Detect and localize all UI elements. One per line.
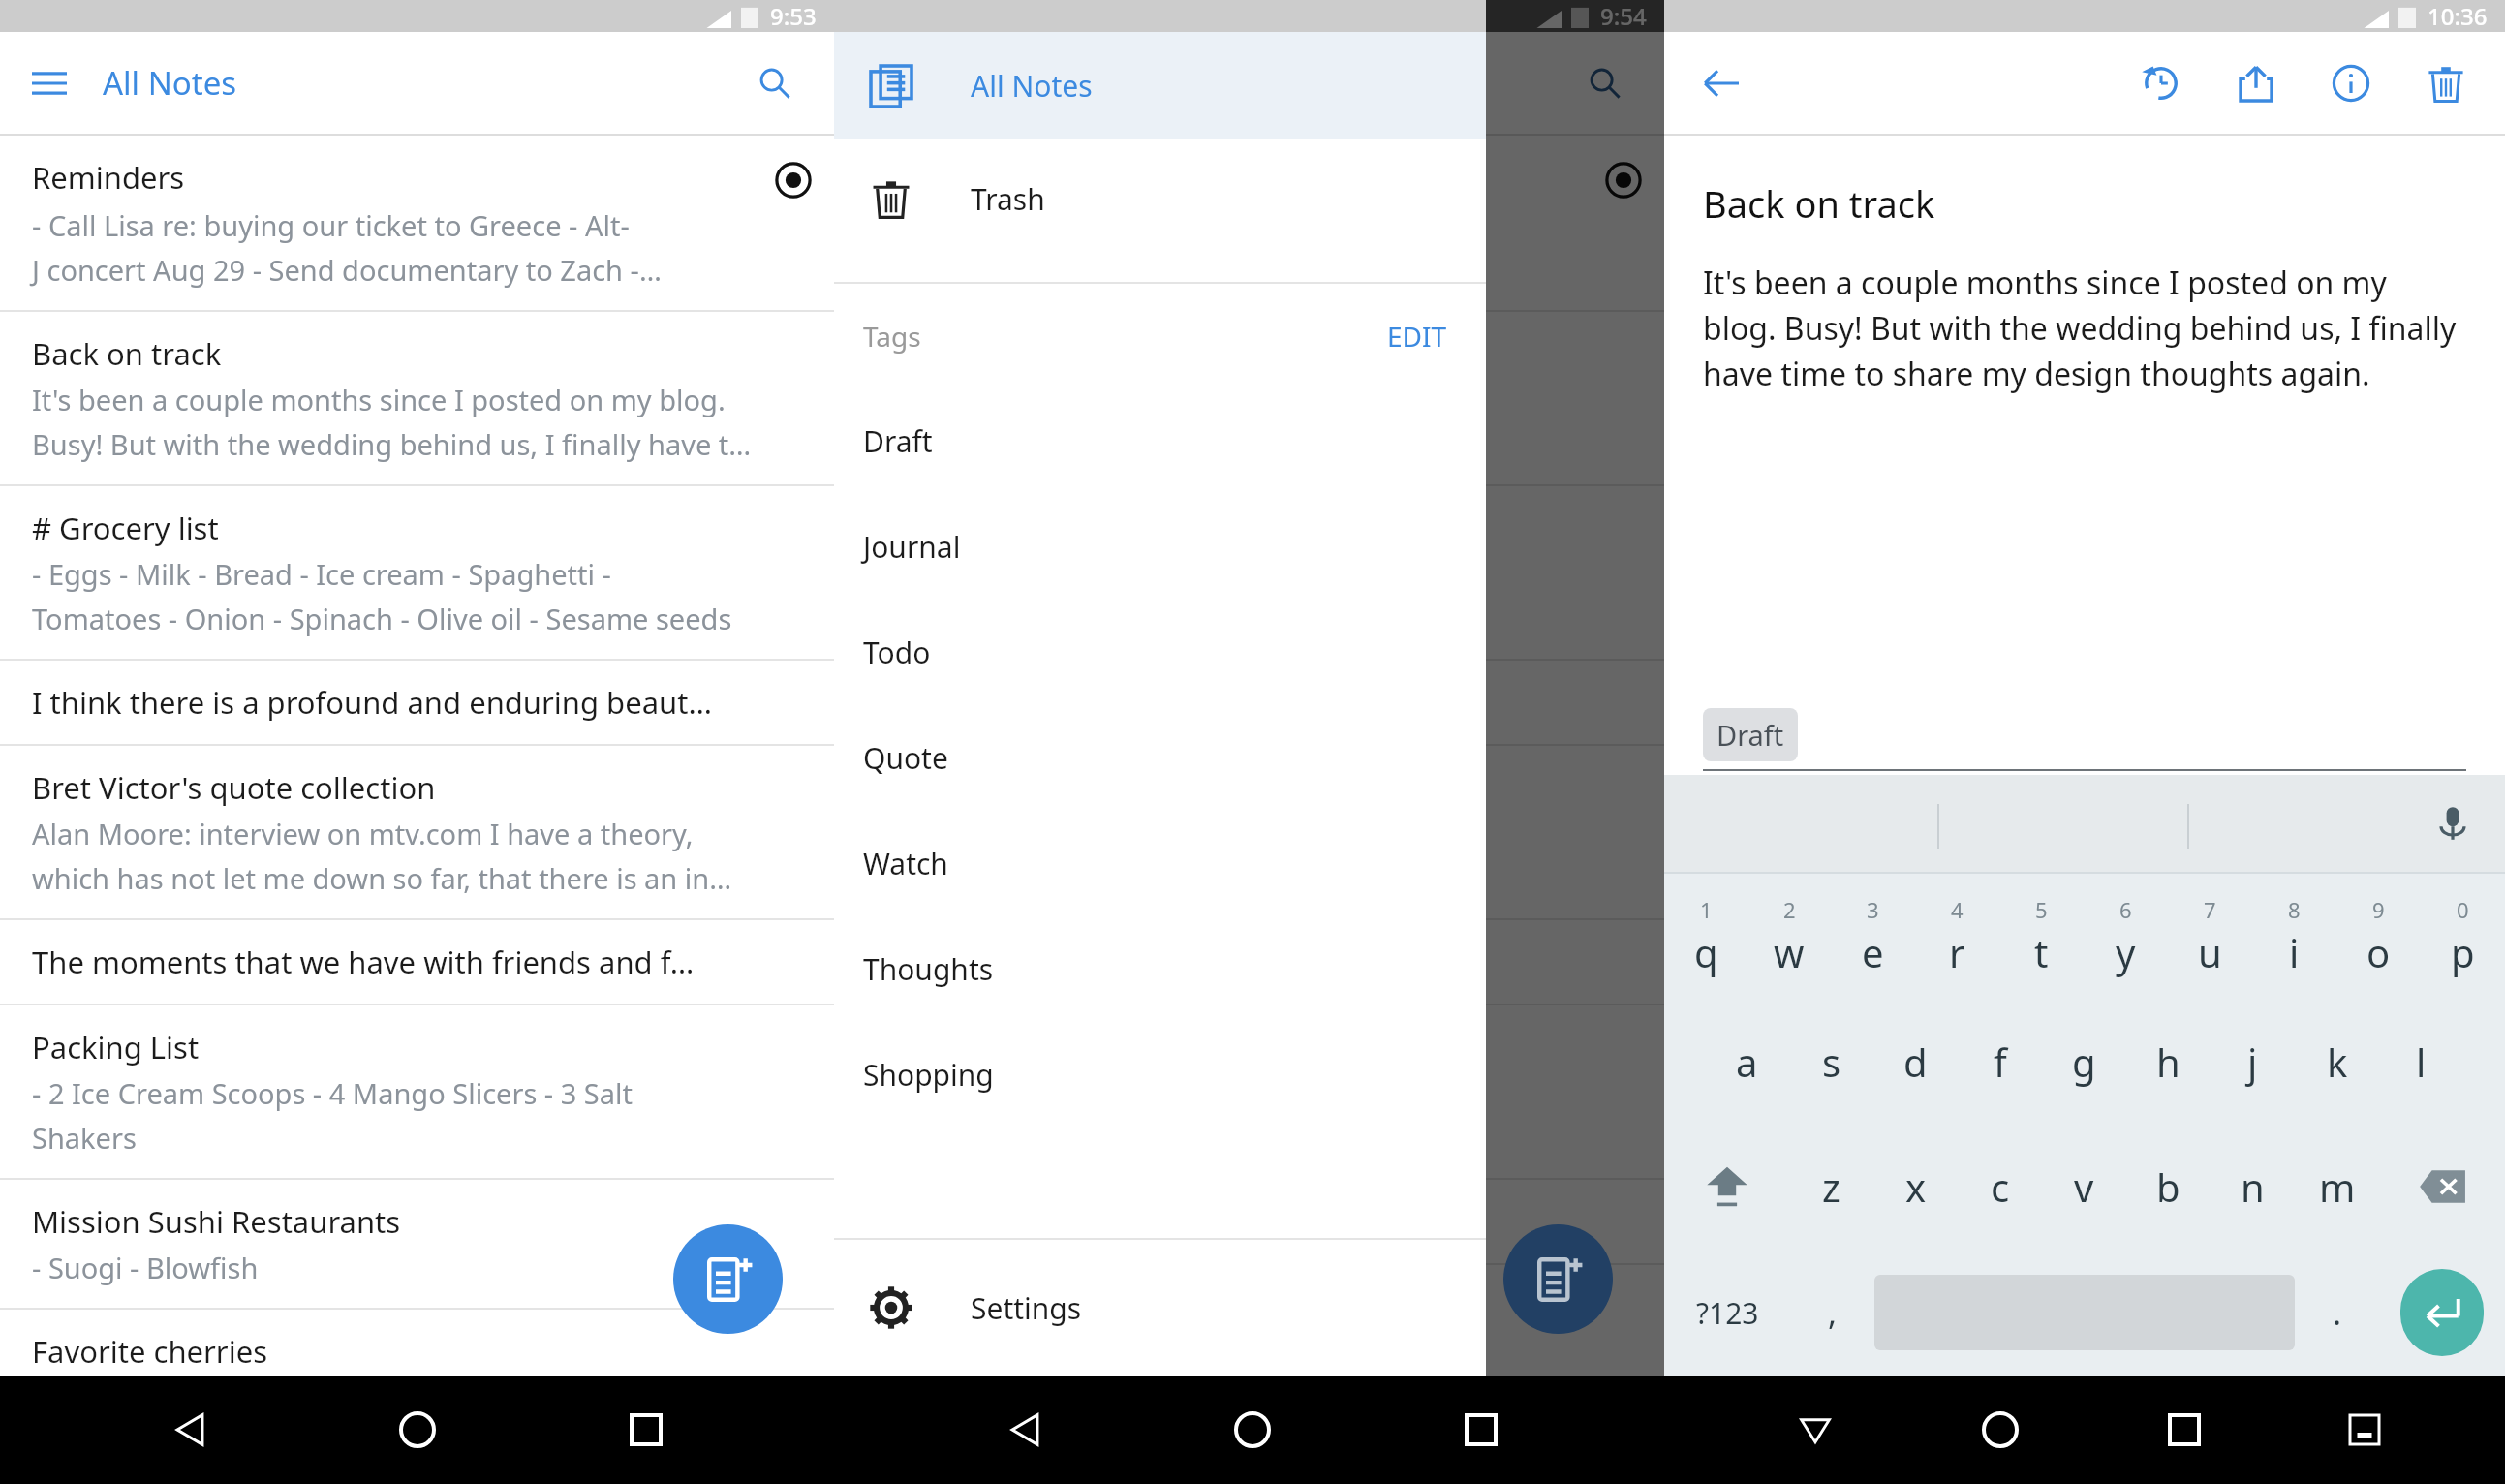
button[interactable]: z: [1789, 1124, 1873, 1250]
staticText: which has not let me down so far, that t…: [32, 859, 732, 897]
button[interactable]: 6: [2084, 874, 2168, 999]
staticText: i: [2289, 926, 2300, 978]
button[interactable]: ?123: [1664, 1250, 1790, 1376]
button[interactable]: Trash: [834, 139, 1486, 258]
button[interactable]: Home: [379, 1391, 456, 1469]
button[interactable]: .: [2295, 1250, 2379, 1376]
button[interactable]: EDIT: [1377, 308, 1457, 364]
button[interactable]: l: [2379, 999, 2463, 1124]
staticText: d: [1903, 1036, 1928, 1088]
staticText: a: [1736, 1036, 1758, 1088]
button[interactable]: Draft: [834, 388, 1486, 494]
button[interactable]: Shopping: [834, 1022, 1486, 1128]
button[interactable]: Reminders: [0, 136, 834, 312]
button[interactable]: Back on track: [0, 312, 834, 486]
staticText: All Notes: [971, 66, 1093, 106]
button[interactable]: a: [1705, 999, 1789, 1124]
button[interactable]: g: [2042, 999, 2126, 1124]
button[interactable]: h: [2126, 999, 2211, 1124]
staticText: Favorite cherries: [32, 1331, 813, 1372]
button[interactable]: 0: [2421, 874, 2505, 999]
button[interactable]: Draft: [1703, 708, 1798, 761]
button[interactable]: Journal: [834, 494, 1486, 600]
button[interactable]: Back: [151, 1391, 229, 1469]
button[interactable]: Back: [986, 1391, 1064, 1469]
button[interactable]: 9: [2336, 874, 2421, 999]
button[interactable]: Recents: [1442, 1391, 1520, 1469]
staticText: w: [1774, 926, 1805, 978]
button[interactable]: Favorite cherries: [0, 1310, 834, 1376]
button[interactable]: History: [2131, 53, 2191, 113]
staticText: Todo: [863, 633, 931, 672]
button[interactable]: Quote: [834, 705, 1486, 811]
button[interactable]: Thoughts: [834, 916, 1486, 1022]
button[interactable]: Todo: [834, 600, 1486, 705]
staticText: k: [2327, 1036, 2348, 1088]
button[interactable]: ,: [1790, 1250, 1874, 1376]
button[interactable]: j: [2211, 999, 2295, 1124]
button[interactable]: 1: [1664, 874, 1747, 999]
button[interactable]: Bret Victor's quote collection: [0, 746, 834, 920]
staticText: Thoughts: [863, 949, 994, 989]
staticText: Tomatoes - Onion - Spinach - Olive oil -…: [32, 600, 732, 637]
button[interactable]: Watch: [834, 811, 1486, 916]
button[interactable]: 8: [2252, 874, 2336, 999]
button[interactable]: I think there is a profound and enduring…: [0, 661, 834, 746]
button[interactable]: Shift: [1664, 1124, 1789, 1250]
button[interactable]: Recents: [2146, 1391, 2223, 1469]
button[interactable]: v: [2042, 1124, 2126, 1250]
staticText: .: [2333, 1290, 2342, 1335]
button[interactable]: b: [2126, 1124, 2211, 1250]
button[interactable]: All Notes: [834, 32, 1486, 139]
button[interactable]: Back: [1691, 53, 1751, 113]
button[interactable]: Info: [2321, 53, 2381, 113]
button[interactable]: Home: [1962, 1391, 2039, 1469]
button[interactable]: Mission Sushi Restaurants: [0, 1180, 834, 1310]
button[interactable]: 4: [1915, 874, 1999, 999]
button[interactable]: Recents: [607, 1391, 685, 1469]
staticText: - Eggs - Milk - Bread - Ice cream - Spag…: [32, 555, 611, 593]
staticText: Draft: [1716, 716, 1784, 754]
button[interactable]: Delete: [2416, 53, 2476, 113]
button[interactable]: Packing List: [0, 1005, 834, 1180]
button[interactable]: 5: [1999, 874, 2084, 999]
staticText: 5: [2035, 895, 2048, 924]
staticText: - Suogi - Blowfish: [32, 1249, 259, 1286]
button[interactable]: d: [1873, 999, 1958, 1124]
button[interactable]: Open navigation drawer: [19, 53, 79, 113]
button[interactable]: Search: [745, 53, 805, 113]
staticText: Bret Victor's quote collection: [32, 767, 813, 808]
button[interactable]: Backspace: [2379, 1124, 2505, 1250]
staticText: -: [866, 555, 876, 593]
staticText: [866, 508, 1643, 548]
button[interactable]: m: [2295, 1124, 2379, 1250]
button[interactable]: n: [2211, 1124, 2295, 1250]
button[interactable]: s: [1789, 999, 1873, 1124]
button[interactable]: # Grocery list: [0, 486, 834, 661]
staticText: ch -…: [866, 251, 936, 289]
button[interactable]: Enter: [2400, 1269, 2484, 1356]
button[interactable]: Home: [1214, 1391, 1291, 1469]
staticText: f: [1994, 1036, 2007, 1088]
button[interactable]: x: [1873, 1124, 1958, 1250]
staticText: It's been a couple months since I posted…: [1703, 262, 2466, 394]
button[interactable]: 2: [1747, 874, 1831, 999]
button[interactable]: f: [1958, 999, 2042, 1124]
button[interactable]: c: [1958, 1124, 2042, 1250]
button[interactable]: Voice input: [2426, 796, 2480, 850]
button[interactable]: Share: [2226, 53, 2286, 113]
staticText: b: [2156, 1160, 2180, 1213]
button[interactable]: k: [2295, 999, 2379, 1124]
button[interactable]: The moments that we have with friends an…: [0, 920, 834, 1005]
button[interactable]: Settings: [834, 1240, 1486, 1376]
button[interactable]: Back: [1777, 1391, 1854, 1469]
button[interactable]: 7: [2168, 874, 2252, 999]
staticText: [866, 333, 1643, 374]
staticText: ,: [1828, 1290, 1838, 1335]
button[interactable]: New note: [673, 1224, 783, 1334]
staticText: z: [1822, 1160, 1840, 1213]
button[interactable]: Switch keyboard: [2331, 1396, 2398, 1464]
button[interactable]: 3: [1831, 874, 1915, 999]
